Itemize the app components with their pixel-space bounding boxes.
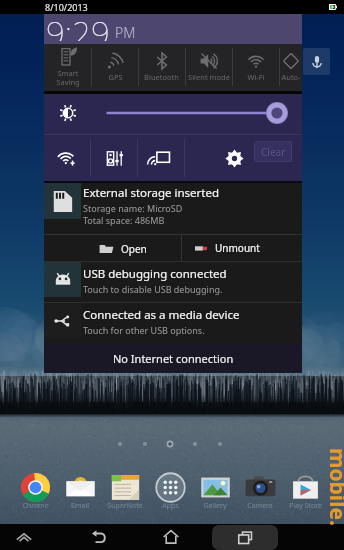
staticText: Gallery (203, 501, 227, 511)
staticText: Wi-Fi (247, 72, 265, 82)
staticText: Total space: 486MB (83, 214, 165, 226)
staticText: Connected as a media device (83, 307, 240, 323)
button[interactable]: GPS (91, 44, 138, 91)
staticText: Unmount (215, 241, 260, 255)
staticText: Clear (261, 145, 286, 159)
staticText: PM (115, 23, 136, 42)
button[interactable]: No Internet connection (44, 343, 302, 373)
button[interactable]: Home (155, 524, 187, 550)
staticText: mobile.ir (328, 448, 344, 528)
button[interactable]: USB debugging connected (44, 262, 302, 302)
staticText: Email (71, 501, 89, 511)
staticText: 9:29 (46, 11, 110, 41)
button[interactable]: Auto- (279, 44, 302, 91)
staticText: USB debugging connected (83, 266, 227, 282)
button[interactable]: Hide keyboard (8, 524, 40, 550)
staticText: Auto- (281, 72, 301, 82)
button[interactable] (96, 100, 292, 126)
button[interactable]: Open (44, 235, 181, 261)
staticText: Camera (247, 501, 273, 511)
staticText: Open (121, 242, 147, 256)
button[interactable]: Clear (254, 141, 292, 162)
other: Brightness (59, 104, 77, 122)
button[interactable]: Unmount (182, 235, 302, 261)
staticText: No Internet connection (113, 351, 234, 366)
button[interactable]: Wi-Fi (232, 44, 279, 91)
staticText: Silent mode (188, 72, 230, 82)
button[interactable]: Voice search (303, 48, 330, 75)
button[interactable]: Back (83, 524, 115, 550)
staticText: GPS (108, 72, 123, 82)
staticText: Apps (162, 501, 179, 511)
staticText: Smart Saving (56, 68, 80, 87)
staticText: Storage name: MicroSD (83, 202, 183, 214)
staticText: 8/10/2013 (45, 1, 88, 13)
staticText: Bluetooth (144, 72, 179, 82)
button[interactable]: External storage inserted (44, 183, 302, 234)
button[interactable]: Play Store (287, 469, 323, 505)
staticText: Touch for other USB options. (83, 324, 205, 336)
button[interactable]: Email (62, 469, 98, 505)
button[interactable]: Camera (242, 469, 278, 505)
button[interactable]: Settings (215, 139, 253, 177)
button[interactable]: Silent mode (185, 44, 232, 91)
button[interactable]: Connected as a media device (44, 303, 302, 343)
staticText: SuperNote (107, 501, 143, 511)
button[interactable]: Screen mirroring (138, 135, 185, 181)
button[interactable]: Sound settings (91, 135, 138, 181)
staticText: Chrome (22, 501, 49, 511)
button[interactable]: Smart Saving (44, 44, 91, 91)
staticText: Touch to disable USB debugging. (83, 283, 223, 295)
button[interactable]: Wi-Fi hotspot (44, 135, 91, 181)
button[interactable]: SuperNote (107, 469, 143, 505)
staticText: Play Store (289, 501, 322, 511)
button[interactable]: Chrome (17, 469, 53, 505)
button[interactable]: Recent apps (212, 525, 278, 550)
button[interactable]: Apps (152, 469, 188, 505)
staticText: External storage inserted (83, 185, 220, 201)
button[interactable]: Gallery (197, 469, 233, 505)
button[interactable]: Bluetooth (138, 44, 185, 91)
